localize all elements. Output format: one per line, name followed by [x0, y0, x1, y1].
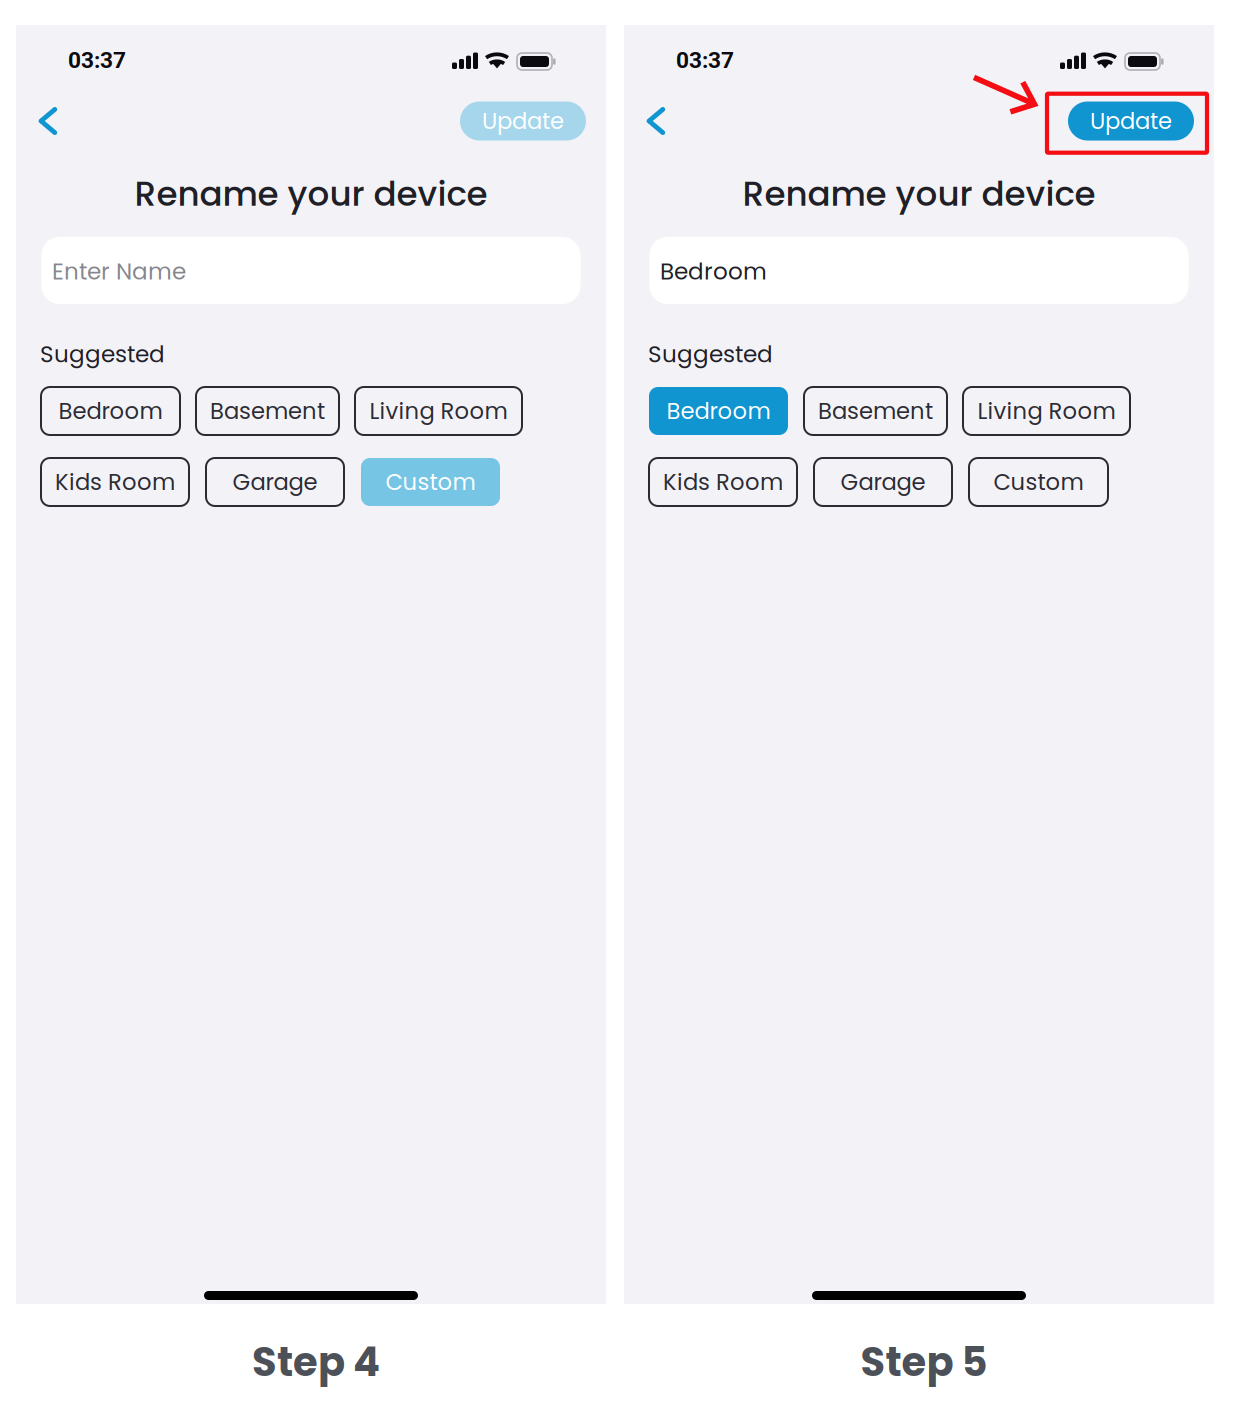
staticText: Basement	[818, 395, 933, 427]
button[interactable]: Bedroom	[41, 387, 180, 435]
staticText: Suggested	[648, 338, 773, 370]
staticText: Living Room	[977, 395, 1115, 427]
staticText: Update	[482, 105, 564, 137]
button[interactable]: Basement	[196, 387, 339, 435]
staticText: 03:37	[676, 47, 734, 74]
staticText: Suggested	[40, 338, 165, 370]
button[interactable]: Living Room	[355, 387, 522, 435]
button[interactable]: Custom	[969, 458, 1108, 506]
button[interactable]: Living Room	[963, 387, 1130, 435]
button[interactable]: Kids Room	[649, 458, 797, 506]
button[interactable]: Bedroom	[649, 387, 788, 435]
staticText: Step 4	[252, 1334, 380, 1390]
staticText: Garage	[840, 466, 925, 498]
button[interactable]: Kids Room	[41, 458, 189, 506]
staticText: Bedroom	[660, 255, 767, 288]
staticText: Custom	[385, 466, 475, 498]
staticText: Update	[1090, 105, 1172, 137]
button[interactable]: Basement	[804, 387, 947, 435]
staticText: Living Room	[369, 395, 507, 427]
staticText: Step 5	[860, 1334, 987, 1390]
button[interactable]: Garage	[206, 458, 344, 506]
staticText: Bedroom	[58, 395, 162, 427]
button[interactable]: Update	[1068, 101, 1194, 140]
staticText: Basement	[210, 395, 325, 427]
staticText: Bedroom	[666, 395, 770, 427]
staticText: Custom	[993, 466, 1083, 498]
staticText: Kids Room	[55, 466, 175, 498]
staticText: 03:37	[68, 47, 126, 74]
button[interactable]: Back	[39, 107, 57, 135]
staticText: Garage	[232, 466, 317, 498]
button[interactable]: Update	[460, 101, 586, 140]
staticText: Rename your device	[742, 170, 1095, 218]
button[interactable]: Garage	[814, 458, 952, 506]
staticText: Kids Room	[663, 466, 783, 498]
staticText: Rename your device	[134, 170, 487, 218]
staticText: Enter Name	[52, 255, 186, 288]
button[interactable]: Back	[647, 107, 665, 135]
button[interactable]: Custom	[361, 458, 500, 506]
